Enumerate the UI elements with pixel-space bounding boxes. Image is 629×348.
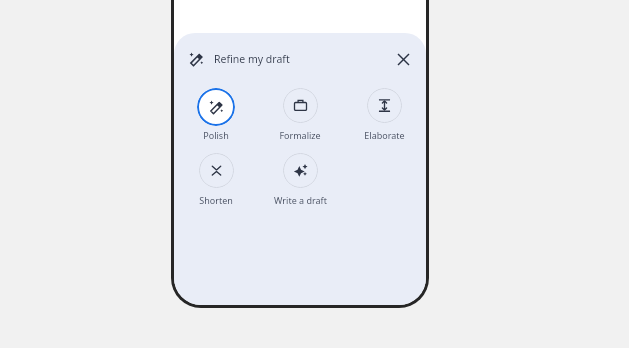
button[interactable]: Write a draft [258, 151, 342, 208]
button[interactable]: Shorten [174, 151, 258, 208]
button[interactable]: Close [391, 47, 415, 71]
staticText: Shorten [199, 194, 233, 206]
button[interactable]: Formalize [258, 86, 342, 143]
staticText: Elaborate [364, 129, 405, 141]
staticText: Formalize [279, 129, 321, 141]
button[interactable]: Polish [174, 86, 258, 143]
button[interactable]: Elaborate [342, 86, 426, 143]
staticText: Refine my draft [214, 52, 290, 66]
staticText: Polish [203, 129, 229, 141]
staticText: Write a draft [274, 194, 327, 206]
